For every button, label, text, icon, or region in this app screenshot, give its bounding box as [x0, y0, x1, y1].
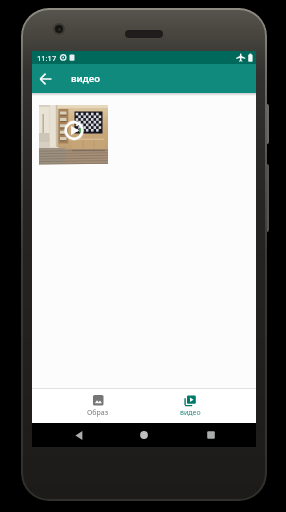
button[interactable] [137, 428, 151, 442]
button[interactable] [72, 428, 86, 442]
staticText: Образ [87, 408, 109, 418]
staticText: видео [71, 72, 100, 85]
staticText: видео [180, 408, 201, 418]
button[interactable]: видео [144, 389, 236, 423]
button[interactable] [204, 428, 218, 442]
button[interactable] [39, 105, 108, 164]
button[interactable]: Образ [52, 389, 144, 423]
button[interactable] [38, 71, 54, 87]
staticText: 11:17 [37, 53, 57, 63]
